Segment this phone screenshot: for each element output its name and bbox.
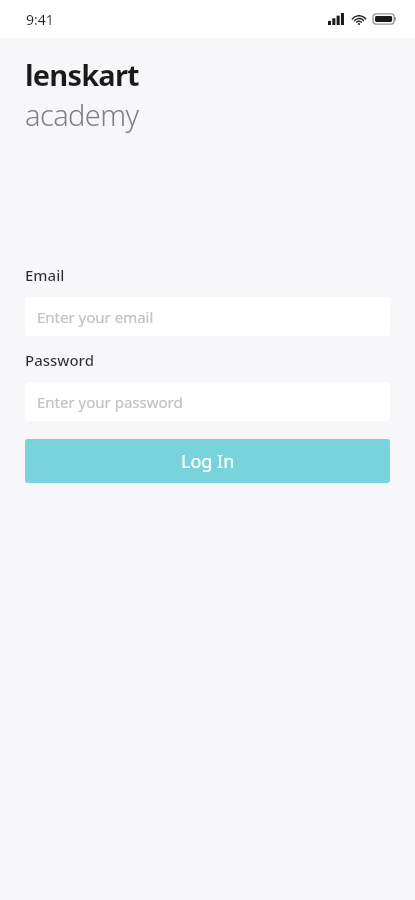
staticText: Enter your password (37, 392, 183, 412)
button[interactable]: Enter your email (25, 297, 390, 336)
button[interactable]: Log In (25, 439, 390, 483)
staticText: Enter your email (37, 307, 154, 327)
staticText: academy (25, 95, 139, 134)
button[interactable]: Enter your password (25, 382, 390, 421)
staticText: 9:41 (26, 10, 54, 29)
staticText: Email (25, 265, 65, 285)
staticText: Log In (181, 449, 235, 474)
staticText: Password (25, 350, 94, 370)
staticText: lenskart (25, 55, 139, 94)
